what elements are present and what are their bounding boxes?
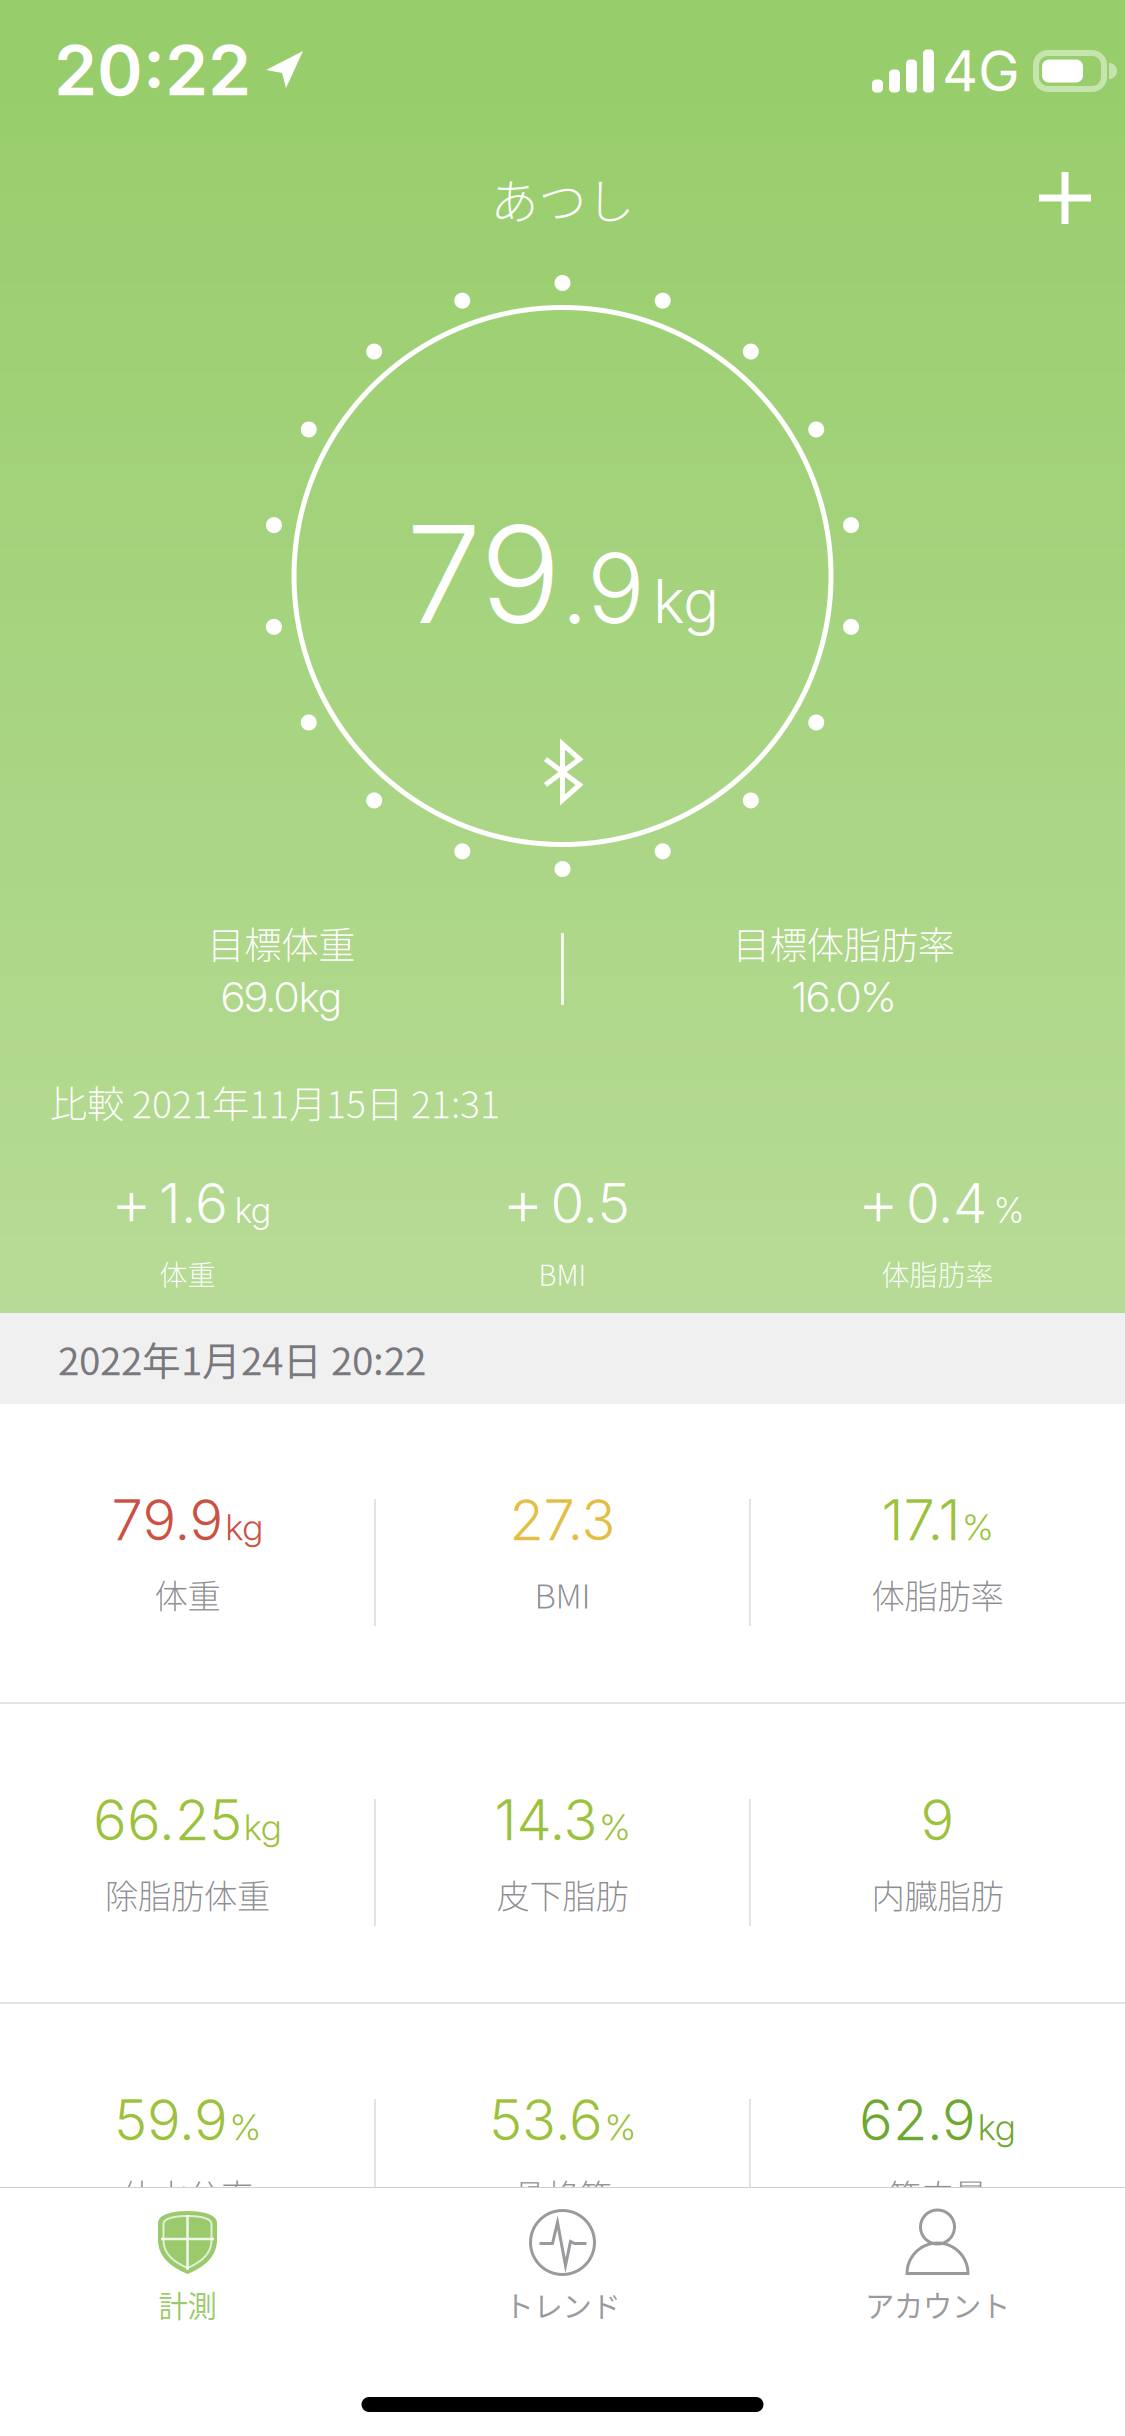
staticText: 除脂肪体重 — [105, 1870, 270, 1918]
staticText: ＋0.4 — [851, 1170, 987, 1239]
staticText: 53.6 — [489, 2086, 603, 2154]
staticText: 目標体脂肪率 — [733, 916, 955, 970]
button[interactable]: トレンド — [375, 2210, 750, 2370]
staticText: 79 — [406, 492, 561, 655]
staticText: % — [599, 1805, 630, 1849]
staticText: % — [962, 1505, 993, 1549]
staticText: % — [230, 2105, 261, 2149]
staticText: kg — [978, 2105, 1016, 2149]
staticText: kg — [653, 565, 719, 637]
staticText: ＋1.6 — [104, 1170, 228, 1239]
staticText: 体水分率 — [121, 2170, 253, 2218]
staticText: 79.9 — [111, 1486, 223, 1554]
button[interactable]: Add measurement — [1011, 144, 1119, 252]
staticText: 体重 — [159, 1253, 215, 1294]
staticText: 4G — [942, 37, 1020, 105]
staticText: 20:22 — [54, 28, 251, 112]
button[interactable]: アカウント — [750, 2210, 1125, 2370]
staticText: 2022年1月24日 20:22 — [58, 1330, 426, 1386]
staticText: kg — [235, 1189, 271, 1231]
staticText: 9 — [920, 1786, 954, 1854]
staticText: 59.9 — [114, 2086, 228, 2154]
staticText: % — [994, 1189, 1024, 1231]
staticText: 66.25 — [93, 1786, 242, 1854]
staticText: BMI — [538, 1253, 586, 1294]
staticText: % — [605, 2105, 636, 2149]
staticText: アカウント — [865, 2283, 1010, 2325]
staticText: トレンド — [504, 2283, 620, 2325]
staticText: kg — [225, 1505, 263, 1549]
staticText: 17.1 — [881, 1486, 960, 1554]
staticText: 14.3 — [494, 1786, 597, 1854]
staticText: 体脂肪率 — [871, 1570, 1003, 1618]
staticText: 27.3 — [509, 1486, 615, 1554]
staticText: BMI — [534, 1570, 590, 1618]
staticText: 皮下脂肪 — [496, 1870, 628, 1918]
staticText: ＋0.5 — [495, 1170, 629, 1239]
staticText: .9 — [561, 530, 645, 646]
staticText: 目標体重 — [207, 916, 355, 970]
staticText: 体脂肪率 — [881, 1253, 993, 1294]
staticText: 骨格筋 — [513, 2170, 612, 2218]
staticText: 計測 — [158, 2283, 216, 2325]
staticText: 62.9 — [859, 2086, 976, 2154]
staticText: 16.0% — [792, 972, 895, 1022]
staticText: kg — [244, 1805, 282, 1849]
staticText: 比較 2021年11月15日 21:31 — [50, 1075, 500, 1129]
button[interactable]: 計測 — [0, 2210, 375, 2370]
staticText: 内臓脂肪 — [871, 1870, 1003, 1918]
staticText: 体重 — [154, 1570, 220, 1618]
staticText: 筋肉量 — [888, 2170, 987, 2218]
staticText: あつし — [490, 163, 634, 233]
staticText: 69.0kg — [221, 972, 341, 1022]
